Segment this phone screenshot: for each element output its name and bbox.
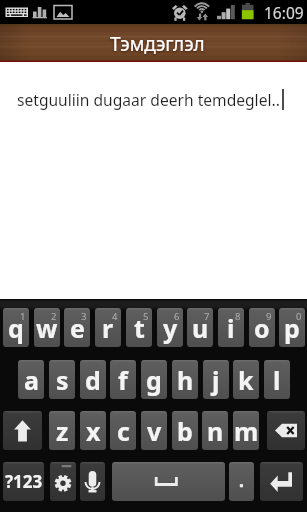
- staticText: 16:09: [264, 2, 304, 23]
- staticText: v: [147, 414, 162, 448]
- button[interactable]: k: [233, 360, 259, 399]
- staticText: x: [86, 414, 101, 448]
- staticText: a: [24, 363, 39, 397]
- button[interactable]: Shift: [3, 411, 42, 450]
- staticText: o: [254, 311, 270, 345]
- button[interactable]: p: [279, 308, 305, 347]
- staticText: 9: [266, 310, 272, 323]
- button[interactable]: o: [249, 308, 275, 347]
- staticText: setguuliin dugaar deerh temdeglel..: [17, 89, 280, 110]
- staticText: d: [85, 363, 101, 397]
- button[interactable]: d: [80, 360, 106, 399]
- button[interactable]: s: [49, 360, 75, 399]
- staticText: 7: [204, 310, 210, 323]
- staticText: t: [134, 311, 145, 345]
- staticText: j: [212, 363, 220, 397]
- staticText: n: [207, 414, 224, 448]
- button[interactable]: z: [49, 411, 75, 450]
- staticText: i: [227, 311, 235, 345]
- staticText: k: [238, 363, 254, 397]
- button[interactable]: Backspace: [267, 411, 305, 450]
- staticText: p: [284, 311, 300, 345]
- staticText: 2: [51, 310, 57, 323]
- staticText: l: [273, 363, 281, 397]
- button[interactable]: w: [34, 308, 60, 347]
- button[interactable]: c: [110, 411, 136, 450]
- button[interactable]: v: [141, 411, 167, 450]
- button[interactable]: j: [203, 360, 229, 399]
- staticText: m: [234, 414, 259, 448]
- button[interactable]: Period: [229, 462, 254, 501]
- staticText: q: [8, 311, 24, 345]
- staticText: y: [163, 311, 178, 345]
- staticText: 5: [143, 310, 149, 323]
- staticText: 1: [20, 310, 26, 323]
- button[interactable]: a: [18, 360, 44, 399]
- button[interactable]: Space: [112, 462, 225, 501]
- staticText: e: [70, 311, 85, 345]
- staticText: 0: [296, 310, 302, 323]
- button[interactable]: h: [172, 360, 198, 399]
- button[interactable]: q: [3, 308, 29, 347]
- button[interactable]: Voice input: [80, 462, 105, 501]
- staticText: r: [102, 311, 114, 345]
- staticText: g: [146, 363, 162, 397]
- button[interactable]: ?123: [3, 462, 44, 501]
- staticText: 6: [174, 310, 180, 323]
- staticText: w: [36, 311, 58, 345]
- button[interactable]: m: [233, 411, 259, 450]
- staticText: z: [56, 414, 69, 448]
- button[interactable]: f: [110, 360, 136, 399]
- staticText: Тэмдэглэл: [110, 31, 205, 57]
- staticText: b: [177, 414, 193, 448]
- button[interactable]: b: [172, 411, 198, 450]
- staticText: f: [118, 363, 128, 397]
- button[interactable]: i: [218, 308, 244, 347]
- button[interactable]: y: [157, 308, 183, 347]
- button[interactable]: g: [141, 360, 167, 399]
- button[interactable]: n: [202, 411, 228, 450]
- staticText: s: [56, 363, 69, 397]
- button[interactable]: Enter: [260, 462, 303, 501]
- staticText: 3: [81, 310, 87, 323]
- button[interactable]: l: [264, 360, 290, 399]
- staticText: ?123: [5, 470, 43, 493]
- staticText: 4: [112, 310, 118, 323]
- button[interactable]: r: [95, 308, 121, 347]
- button[interactable]: t: [126, 308, 152, 347]
- button[interactable]: x: [80, 411, 106, 450]
- staticText: u: [192, 311, 209, 345]
- button[interactable]: Settings: [50, 462, 76, 501]
- staticText: h: [177, 363, 194, 397]
- staticText: 8: [235, 310, 241, 323]
- button[interactable]: u: [187, 308, 213, 347]
- button[interactable]: e: [64, 308, 90, 347]
- staticText: c: [117, 414, 130, 448]
